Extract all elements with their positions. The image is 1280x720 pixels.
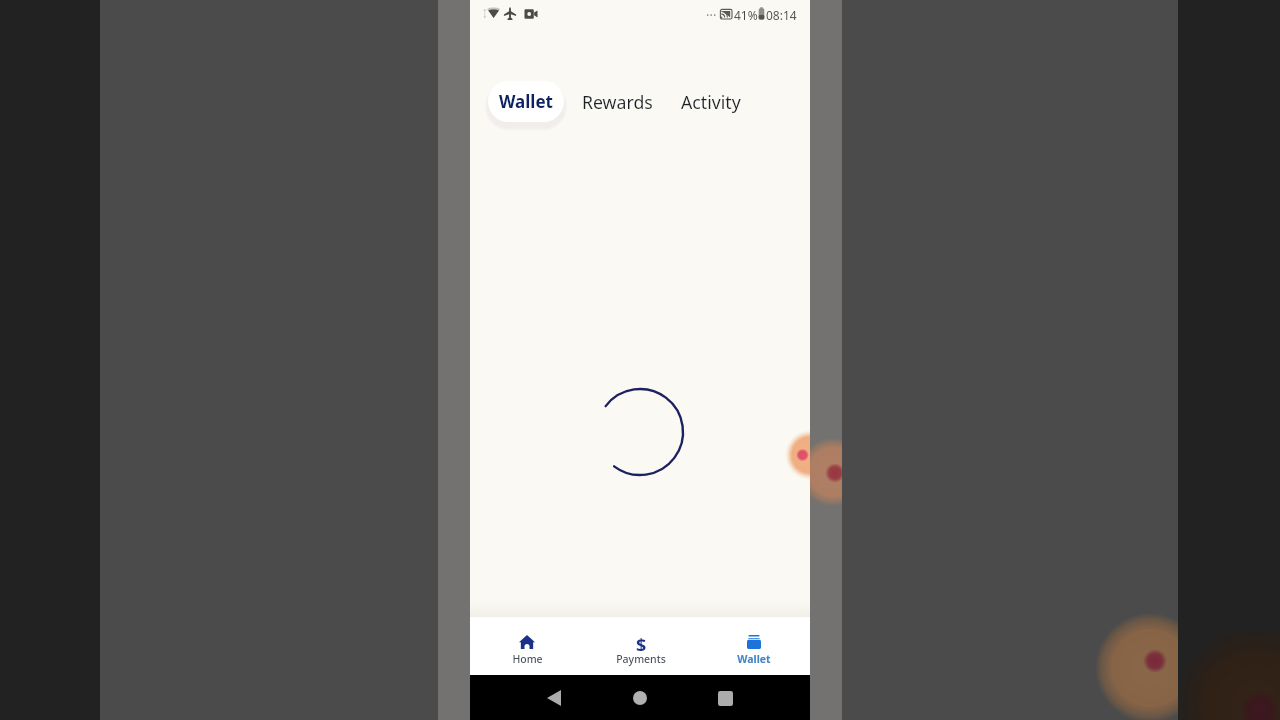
staticText: Home — [512, 652, 543, 666]
staticText: $ — [636, 633, 647, 651]
staticText: Wallet — [499, 90, 553, 113]
button[interactable]: $ — [584, 617, 697, 675]
button[interactable]: Rewards — [564, 82, 665, 122]
button[interactable]: Wallet — [488, 81, 564, 122]
staticText: Payments — [616, 652, 666, 666]
button[interactable]: Home — [627, 685, 653, 711]
button[interactable]: Wallet — [697, 617, 810, 675]
staticText: Wallet — [737, 652, 771, 666]
staticText: Rewards — [582, 90, 653, 114]
button[interactable]: Home — [470, 617, 584, 675]
staticText: 41% — [734, 7, 758, 23]
button[interactable]: Activity — [665, 82, 755, 122]
staticText: 08:14 — [766, 7, 797, 23]
button[interactable]: Back — [540, 684, 568, 712]
staticText: Activity — [681, 90, 741, 114]
button[interactable]: Recent apps — [711, 684, 739, 712]
